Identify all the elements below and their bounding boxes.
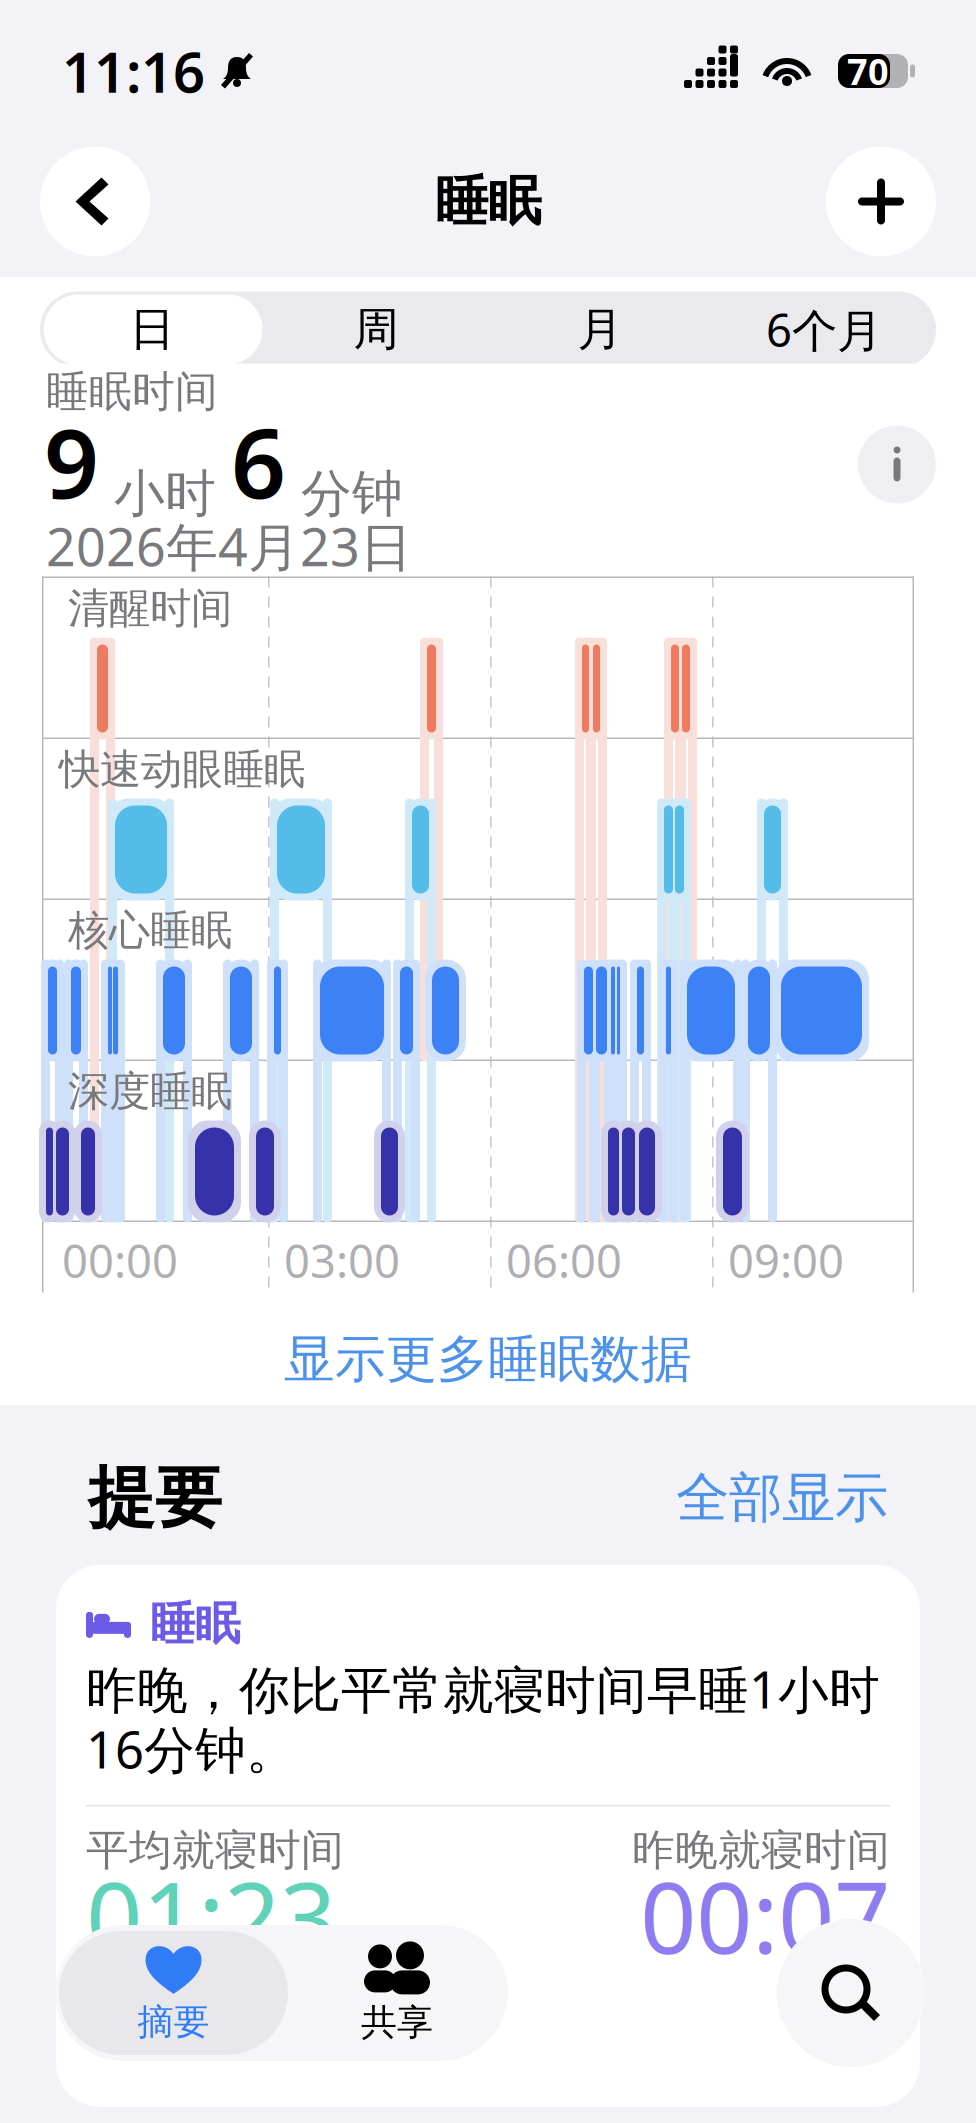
staticText: 清醒时间 [68,583,232,634]
staticText: 11:16 [62,34,205,108]
button[interactable]: 共享 [288,1931,506,2055]
staticText: 分钟 [286,463,403,525]
staticText: 09:00 [728,1230,844,1291]
staticText: 睡眠时间 [46,365,218,418]
staticText: 平均就寝时间 [86,1824,344,1877]
button[interactable]: Search [777,1919,925,2067]
staticText: 2026年4月23日 [46,511,412,581]
staticText: 核心睡眠 [68,905,232,956]
button[interactable]: Add [826,146,936,256]
staticText: 6 [231,397,286,525]
staticText: 显示更多睡眠数据 [284,1328,692,1391]
staticText: 03:00 [284,1230,400,1291]
staticText: 全部显示 [676,1465,888,1531]
staticText: 深度睡眠 [68,1066,232,1117]
button[interactable]: 周 [264,291,488,367]
button[interactable]: Info [858,425,936,503]
button[interactable]: Back [40,146,150,256]
staticText: 01:23 [86,1850,336,1981]
button[interactable]: 日 [40,291,264,367]
staticText: 16分钟。 [86,1715,297,1782]
staticText: 日 [129,302,174,357]
staticText: 提要 [88,1457,222,1539]
staticText: 6个月 [766,299,882,360]
staticText: 共享 [361,2000,433,2045]
staticText: 昨晚，你比平常就寝时间早睡1小时 [86,1655,880,1722]
staticText: 00:00 [62,1230,178,1291]
staticText: 小时 [99,463,231,525]
button[interactable]: 全部显示 [676,1465,888,1531]
staticText: 摘要 [137,2000,209,2044]
staticText: 00:07 [640,1850,890,1981]
staticText: 睡眠 [150,1596,240,1652]
staticText: 昨晚就寝时间 [632,1824,890,1877]
staticText: 9 [44,397,99,525]
staticText: 月 [577,302,622,357]
button[interactable]: 显示更多睡眠数据 [40,1300,936,1418]
staticText: 快速动眼睡眠 [59,744,305,795]
staticText: 周 [353,302,398,357]
staticText: 睡眠 [435,169,541,234]
button[interactable]: 月 [488,291,712,367]
button[interactable]: 6个月 [712,291,936,367]
staticText: 06:00 [506,1230,622,1291]
button[interactable]: 摘要 [59,1931,288,2055]
staticText: 70 [847,47,889,95]
